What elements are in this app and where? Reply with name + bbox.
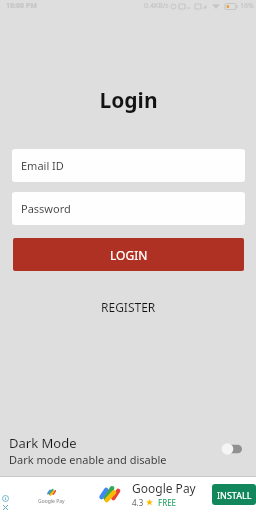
staticText: Login: [99, 86, 158, 115]
other: Ad info: [2, 495, 9, 502]
staticText: Google Pay: [38, 498, 65, 505]
staticText: FREE: [158, 497, 177, 508]
staticText: 10:08 PM: [6, 1, 37, 11]
staticText: Email ID: [21, 158, 64, 173]
button[interactable]: Dark mode toggle: [217, 440, 243, 458]
button[interactable]: Password: [12, 192, 245, 225]
staticText: 4.3: [132, 497, 144, 508]
staticText: Google Pay: [132, 480, 196, 496]
staticText: Password: [21, 201, 71, 216]
staticText: Dark mode enable and disable: [9, 452, 167, 467]
button[interactable]: Dark Mode: [0, 427, 256, 473]
staticText: INSTALL: [217, 489, 252, 501]
button[interactable]: Email ID: [12, 149, 245, 182]
button[interactable]: INSTALL: [212, 484, 256, 505]
staticText: Dark Mode: [9, 434, 77, 452]
button[interactable]: Ad info: [0, 476, 256, 512]
other: Close ad: [2, 504, 9, 511]
staticText: LOGIN: [110, 247, 148, 263]
button[interactable]: REGISTER: [0, 296, 256, 318]
staticText: REGISTER: [101, 299, 156, 315]
staticText: 0.4KB/s: [144, 1, 169, 11]
button[interactable]: LOGIN: [13, 238, 244, 271]
staticText: 16%: [240, 1, 254, 11]
